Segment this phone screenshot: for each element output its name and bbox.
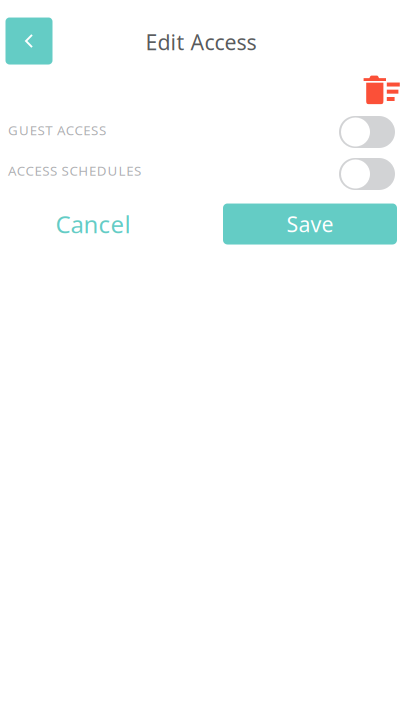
button[interactable]: Cancel — [33, 203, 153, 244]
staticText: GUEST ACCESS — [8, 121, 106, 139]
staticText: ACCESS SCHEDULES — [8, 162, 141, 179]
button[interactable]: Delete — [363, 75, 400, 105]
button[interactable]: GUEST ACCESS — [0, 111, 403, 152]
button[interactable]: Back — [5, 17, 52, 64]
button[interactable]: ACCESS SCHEDULES — [0, 153, 403, 194]
button[interactable]: Save — [223, 203, 397, 244]
staticText: Save — [286, 210, 333, 238]
staticText: Cancel — [55, 208, 130, 240]
staticText: Edit Access — [145, 28, 256, 56]
